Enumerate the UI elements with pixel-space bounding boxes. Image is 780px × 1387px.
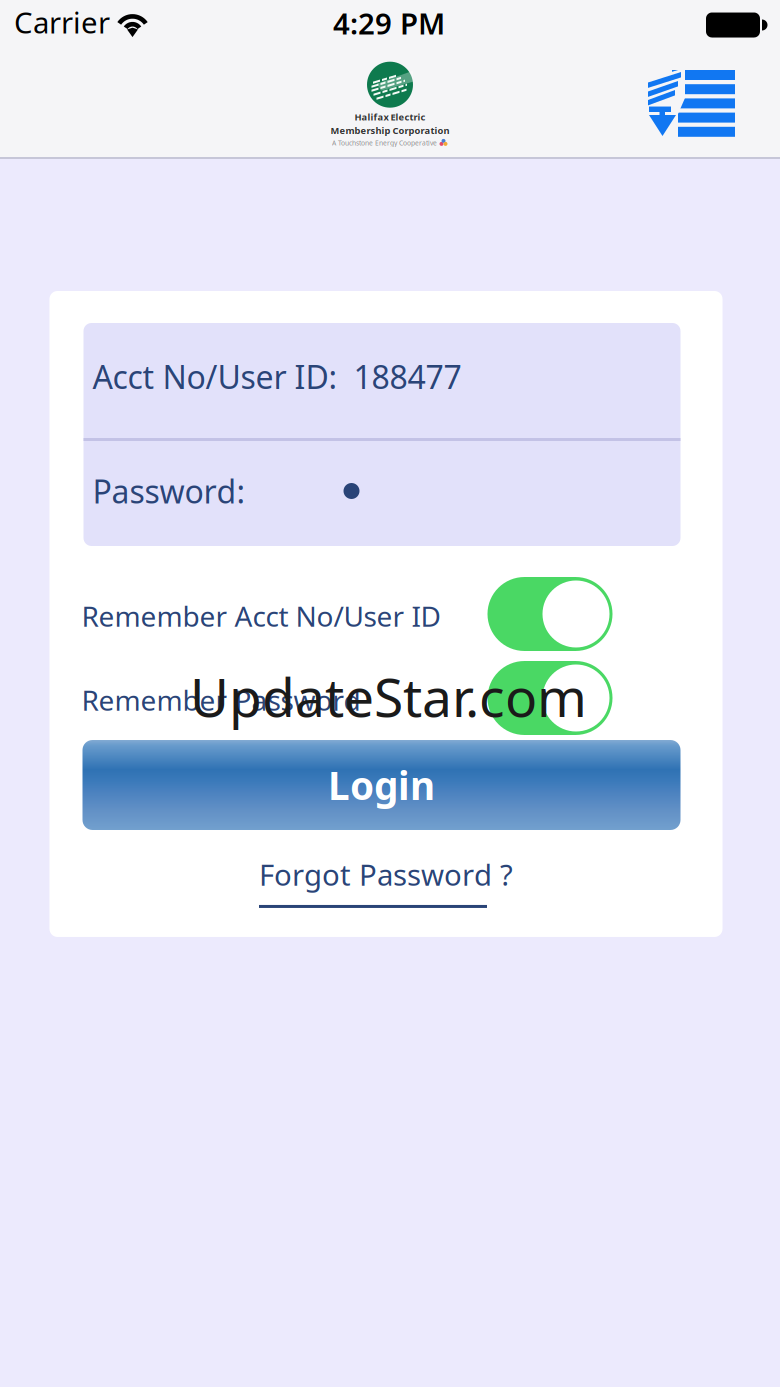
button[interactable]: Acct No/User ID: 188477: [83, 323, 680, 438]
button[interactable]: Remember Acct No/User ID: [83, 577, 680, 651]
staticText: Carrier: [14, 2, 110, 41]
staticText: Password:: [92, 470, 245, 512]
button[interactable]: Forgot Password ?: [251, 855, 513, 908]
staticText: Halifax Electric: [354, 111, 425, 123]
staticText: A Touchstone Energy Cooperative: [332, 138, 437, 147]
staticText: Remember Password: [81, 681, 360, 719]
button[interactable]: Menu: [648, 70, 780, 137]
staticText: Forgot Password ?: [259, 855, 513, 894]
staticText: 4:29 PM: [333, 3, 445, 42]
button[interactable]: Login: [82, 740, 680, 830]
staticText: Remember Acct No/User ID: [81, 597, 440, 635]
staticText: Acct No/User ID: 188477: [92, 355, 461, 398]
staticText: Login: [328, 759, 435, 811]
staticText: Membership Corporation: [330, 124, 449, 136]
staticText: UpdateStar.com: [190, 661, 587, 732]
button[interactable]: Password:: [83, 438, 680, 546]
button[interactable]: Remember Password: [83, 661, 680, 735]
